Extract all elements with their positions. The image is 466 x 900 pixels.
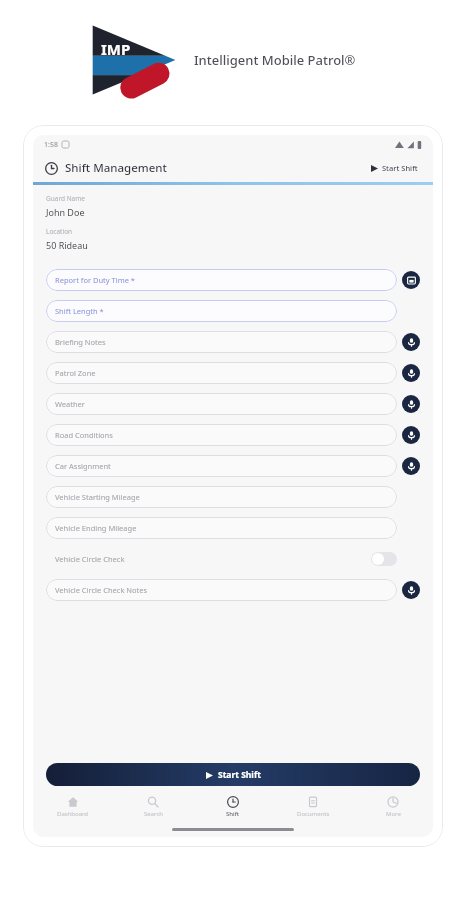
staticText: Search — [144, 810, 163, 818]
staticText: Briefing Notes — [55, 337, 106, 347]
button[interactable]: Pick date and time — [402, 271, 420, 289]
button[interactable]: Vehicle Circle Check — [46, 543, 420, 574]
button[interactable]: More — [353, 792, 433, 822]
button[interactable]: Shift — [193, 792, 273, 822]
button[interactable]: Shift Length * — [46, 300, 397, 322]
staticText: IMP — [101, 39, 131, 59]
button[interactable]: Voice input — [402, 364, 420, 382]
staticText: Car Assignment — [55, 461, 111, 471]
staticText: Shift Length * — [55, 306, 104, 316]
staticText: John Doe — [46, 206, 85, 218]
staticText: 1:58 — [44, 140, 58, 150]
staticText: Vehicle Ending Mileage — [55, 523, 137, 533]
button[interactable]: Voice input — [402, 395, 420, 413]
staticText: Patrol Zone — [55, 368, 96, 378]
button[interactable]: Vehicle Circle Check Notes — [46, 579, 397, 601]
staticText: Intelligent Mobile Patrol® — [194, 51, 356, 69]
button[interactable]: Documents — [273, 792, 353, 822]
button[interactable]: Vehicle Starting Mileage — [46, 486, 397, 508]
staticText: Shift — [226, 810, 240, 818]
staticText: Shift Management — [65, 160, 167, 176]
button[interactable]: Search — [113, 792, 193, 822]
staticText: Road Conditions — [55, 430, 113, 440]
button[interactable]: Weather — [46, 393, 397, 415]
staticText: Vehicle Circle Check — [55, 554, 125, 564]
staticText: Start Shift — [218, 769, 261, 781]
staticText: Report for Duty Time * — [55, 275, 135, 285]
button[interactable]: Start Shift — [46, 763, 420, 786]
staticText: Vehicle Circle Check Notes — [55, 585, 148, 595]
button[interactable]: Briefing Notes — [46, 331, 397, 353]
staticText: Vehicle Starting Mileage — [55, 492, 140, 502]
button[interactable]: Vehicle Ending Mileage — [46, 517, 397, 539]
staticText: Start Shift — [382, 163, 418, 173]
button[interactable]: Car Assignment — [46, 455, 397, 477]
button[interactable]: Road Conditions — [46, 424, 397, 446]
button[interactable]: Dashboard — [33, 792, 113, 822]
staticText: More — [386, 810, 401, 818]
button[interactable]: Report for Duty Time * — [46, 269, 397, 291]
staticText: Location — [46, 227, 73, 236]
staticText: Weather — [55, 399, 85, 409]
staticText: Guard Name — [46, 194, 85, 203]
button[interactable]: Voice input — [402, 426, 420, 444]
button[interactable]: Voice input — [402, 457, 420, 475]
button[interactable]: Voice input — [402, 581, 420, 599]
staticText: Documents — [297, 810, 330, 818]
staticText: Dashboard — [57, 810, 89, 818]
button[interactable]: Voice input — [402, 333, 420, 351]
staticText: 50 Rideau — [46, 239, 88, 251]
button[interactable]: Start Shift — [368, 160, 421, 176]
button[interactable]: Patrol Zone — [46, 362, 397, 384]
